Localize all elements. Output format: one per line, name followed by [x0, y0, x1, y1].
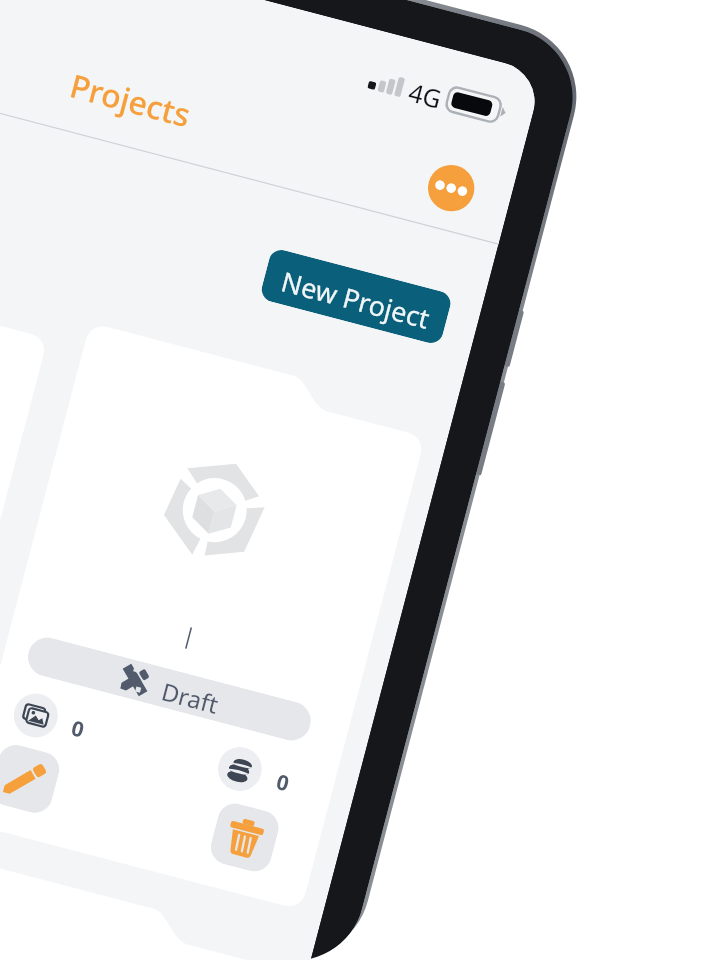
- staticText: Projects: [65, 63, 195, 137]
- button[interactable]: Images: [9, 689, 63, 742]
- staticText: 0: [273, 767, 293, 799]
- staticText: Draft: [158, 674, 223, 721]
- staticText: New Project: [278, 262, 434, 337]
- button[interactable]: |: [0, 322, 432, 910]
- button[interactable]: |: [0, 265, 54, 811]
- button[interactable]: New Project: [259, 247, 453, 346]
- button[interactable]: Draft: [24, 633, 315, 745]
- button[interactable]: More options: [423, 160, 480, 217]
- button[interactable]: Delete: [207, 800, 282, 875]
- button[interactable]: Edit: [0, 741, 63, 817]
- staticText: 0: [68, 713, 88, 745]
- button[interactable]: |: [0, 855, 292, 960]
- staticText: |: [180, 619, 200, 651]
- staticText: 4G: [405, 74, 446, 116]
- button[interactable]: Coins: [213, 742, 267, 796]
